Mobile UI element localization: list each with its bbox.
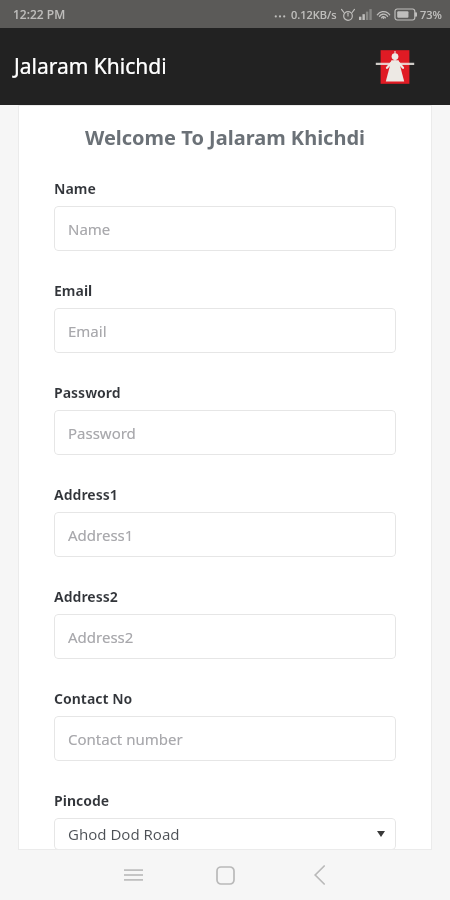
staticText: Name xyxy=(68,219,111,239)
staticText: Pincode xyxy=(54,791,110,810)
staticText: Password xyxy=(68,423,136,443)
staticText: 0.12KB/s xyxy=(291,7,337,22)
button[interactable]: Address2 xyxy=(54,614,396,659)
staticText: Address1 xyxy=(54,485,118,504)
button[interactable]: Name xyxy=(54,206,396,251)
button[interactable]: Home xyxy=(205,855,245,895)
staticText: 12:22 PM xyxy=(13,6,66,22)
button[interactable]: Address1 xyxy=(54,512,396,557)
button[interactable]: Email xyxy=(54,308,396,353)
staticText: Address1 xyxy=(68,525,134,545)
staticText: Address2 xyxy=(54,587,118,606)
staticText: Email xyxy=(54,281,93,300)
staticText: Name xyxy=(54,179,96,198)
button[interactable]: Password xyxy=(54,410,396,455)
staticText: Welcome To Jalaram Khichdi xyxy=(18,124,432,151)
staticText: Jalaram Khichdi xyxy=(14,52,167,81)
staticText: Contact number xyxy=(68,729,183,749)
button[interactable]: Ghod Dod Road xyxy=(54,818,396,850)
staticText: Contact No xyxy=(54,689,133,708)
staticText: Password xyxy=(54,383,121,402)
button[interactable]: Back xyxy=(300,855,340,895)
staticText: 73% xyxy=(420,7,442,22)
staticText: Email xyxy=(68,321,107,341)
button[interactable]: Contact number xyxy=(54,716,396,761)
staticText: Ghod Dod Road xyxy=(68,824,180,844)
button[interactable]: Recent apps xyxy=(113,855,153,895)
button[interactable]: App logo xyxy=(371,43,419,91)
staticText: Address2 xyxy=(68,627,134,647)
